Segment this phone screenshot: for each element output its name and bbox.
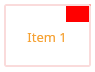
staticText: Item 1 bbox=[27, 28, 67, 46]
button[interactable]: Status badge bbox=[66, 4, 91, 22]
button[interactable]: Status badge bbox=[4, 4, 91, 67]
